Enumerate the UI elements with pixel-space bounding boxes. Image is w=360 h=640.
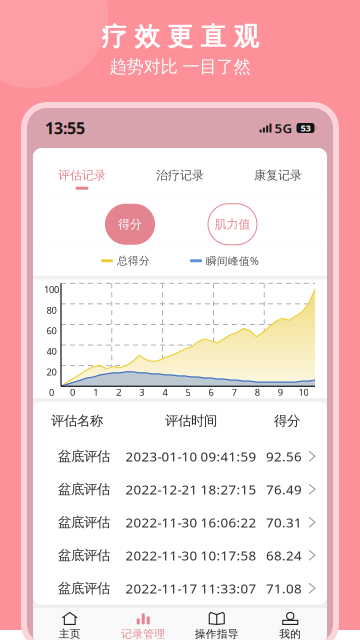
staticText: 100 <box>44 283 59 296</box>
staticText: 0 <box>70 386 75 398</box>
button[interactable]: 盆底评估 <box>33 473 327 506</box>
staticText: 盆底评估 <box>58 481 110 497</box>
staticText: 盆底评估 <box>58 448 110 464</box>
staticText: 盆底评估 <box>58 514 110 530</box>
staticText: 评估名称 <box>51 413 103 429</box>
staticText: 71.08 <box>266 579 302 597</box>
staticText: 评估时间 <box>165 413 217 429</box>
staticText: 92.56 <box>266 447 302 465</box>
staticText: 2022-12-21 18:27:15 <box>125 480 256 498</box>
staticText: 70.31 <box>266 513 302 531</box>
staticText: 盆底评估 <box>58 580 110 596</box>
staticText: 康复记录 <box>254 168 302 183</box>
staticText: 治疗记录 <box>156 168 204 183</box>
staticText: 6 <box>209 386 214 398</box>
staticText: 主页 <box>59 627 81 640</box>
button[interactable]: 康复记录 <box>229 148 327 197</box>
staticText: 肌力值 <box>214 217 250 232</box>
staticText: 76.49 <box>266 480 302 498</box>
staticText: 2022-11-30 16:06:22 <box>125 513 256 531</box>
staticText: 得分 <box>118 217 142 232</box>
button[interactable]: 我的 <box>253 606 327 640</box>
staticText: 瞬间峰值% <box>206 254 259 268</box>
staticText: 60 <box>46 324 56 337</box>
button[interactable]: 盆底评估 <box>33 506 327 539</box>
staticText: 记录管理 <box>121 627 165 640</box>
staticText: 总得分 <box>117 254 150 267</box>
staticText: 疗 效 更 直 观 <box>101 21 258 52</box>
staticText: 我的 <box>279 627 301 640</box>
button[interactable]: 盆底评估 <box>33 539 327 572</box>
button[interactable]: 评估记录 <box>33 148 131 197</box>
staticText: 盆底评估 <box>58 547 110 563</box>
button[interactable]: 得分 <box>105 204 155 245</box>
staticText: 4 <box>162 386 167 398</box>
staticText: 2 <box>116 386 121 398</box>
staticText: 53 <box>300 122 310 134</box>
button[interactable]: 治疗记录 <box>131 148 229 197</box>
staticText: 5 <box>185 386 190 398</box>
staticText: 20 <box>46 366 56 378</box>
button[interactable]: 记录管理 <box>106 606 180 640</box>
staticText: 80 <box>46 304 56 316</box>
staticText: 3 <box>139 386 144 398</box>
button[interactable]: 主页 <box>33 606 106 640</box>
staticText: 8 <box>255 386 260 398</box>
button[interactable]: 肌力值 <box>208 204 257 245</box>
staticText: 2022-11-30 10:17:58 <box>125 546 256 564</box>
staticText: 评估记录 <box>58 168 106 183</box>
button[interactable]: 操作指导 <box>180 606 253 640</box>
staticText: 1 <box>93 386 98 398</box>
staticText: 13:55 <box>45 117 85 139</box>
staticText: 0 <box>49 386 54 399</box>
button[interactable]: 盆底评估 <box>33 572 327 605</box>
staticText: 9 <box>278 386 283 398</box>
staticText: 得分 <box>274 413 300 429</box>
staticText: 68.24 <box>266 546 302 564</box>
staticText: 操作指导 <box>195 627 239 640</box>
button[interactable]: 盆底评估 <box>33 440 327 473</box>
staticText: 趋势对比 一目了然 <box>109 56 250 77</box>
staticText: 40 <box>46 345 56 357</box>
staticText: 2022-11-17 11:33:07 <box>125 579 256 597</box>
staticText: 10 <box>298 386 308 398</box>
staticText: 2023-01-10 09:41:59 <box>125 447 256 465</box>
staticText: 5G <box>274 119 292 137</box>
staticText: 7 <box>232 386 237 398</box>
